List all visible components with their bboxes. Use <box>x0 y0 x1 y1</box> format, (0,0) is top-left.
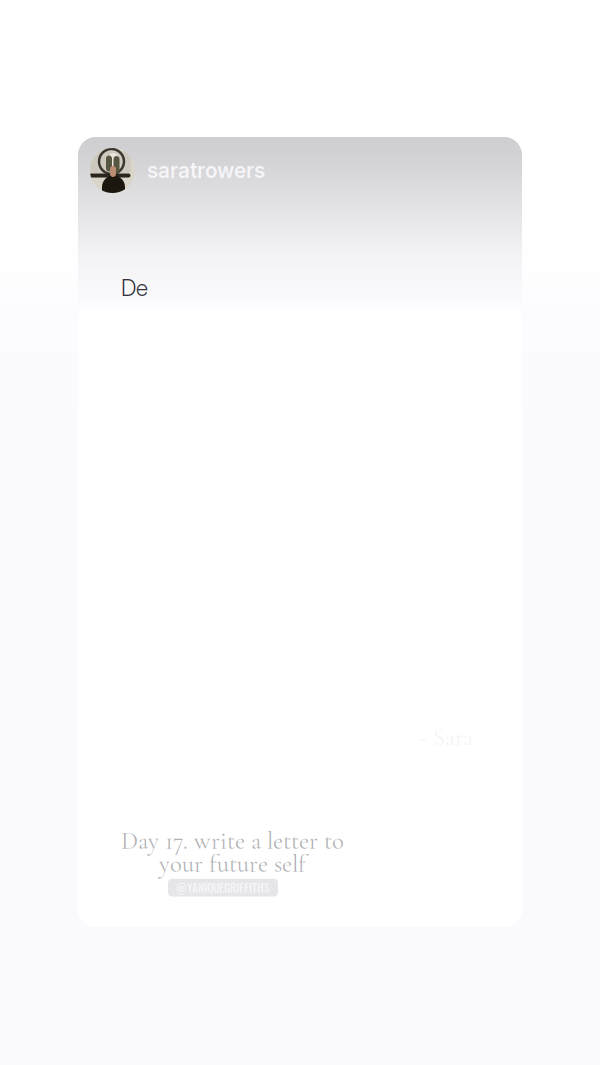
staticText: De <box>121 274 148 301</box>
staticText: saratrowers <box>147 158 265 183</box>
staticText: Day 17. write a letter to <box>121 826 344 856</box>
staticText: your future self <box>159 849 306 879</box>
staticText: @YANIQUEGRIFFITHS <box>176 879 270 896</box>
button[interactable]: saratrowers <box>78 137 522 193</box>
